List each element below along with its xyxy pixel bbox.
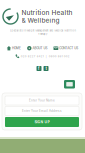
staticText: & Wellbeing xyxy=(21,16,59,24)
staticText: HOME xyxy=(12,46,21,50)
staticText: ABOUT US xyxy=(32,46,47,50)
staticText: Specialists in Weight Management and Med… xyxy=(9,29,75,32)
button[interactable]: Enter Your Name xyxy=(5,96,79,105)
staticText: Enter Your Name xyxy=(29,99,55,102)
button[interactable]: Twitter xyxy=(43,66,48,71)
button[interactable]: ABOUT US xyxy=(27,46,47,50)
button[interactable]: Menu xyxy=(64,80,75,88)
staticText: Nutrition Health xyxy=(21,9,72,16)
button[interactable]: Facebook xyxy=(36,66,41,71)
button[interactable]: SIGN UP xyxy=(5,117,79,127)
button[interactable]: HOME xyxy=(7,46,21,50)
staticText: 020 8227 6421 | 0800 861 002 xyxy=(21,55,70,58)
staticText: f xyxy=(38,66,40,71)
staticText: Enter Your Email Address xyxy=(22,109,62,113)
staticText: Therapy xyxy=(38,33,47,36)
button[interactable]: Enter Your Email Address xyxy=(5,106,79,115)
staticText: SIGN UP xyxy=(34,120,49,124)
staticText: CONTACT US xyxy=(59,46,78,50)
button[interactable]: CONTACT US xyxy=(53,46,78,50)
